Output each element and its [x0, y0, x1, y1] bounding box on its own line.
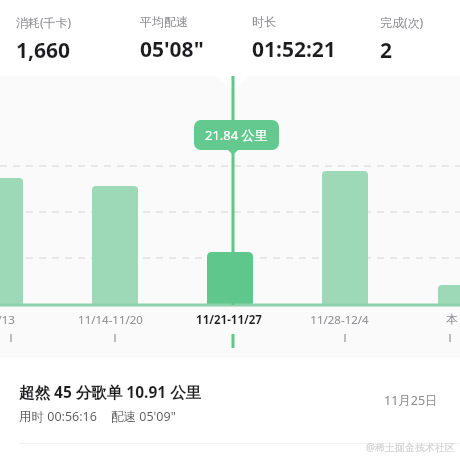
button[interactable]: 超然 45 分歌单 10.91 公里 — [0, 370, 460, 432]
button[interactable]: 时长 — [248, 10, 340, 68]
staticText: 平均配速 — [140, 14, 188, 29]
staticText: 11/21-11/27 — [196, 312, 262, 328]
staticText: 11/28-12/4 — [310, 312, 369, 328]
staticText: 05'08" — [140, 35, 204, 64]
button[interactable]: 21.84 公里 — [194, 120, 279, 150]
staticText: 超然 45 分歌单 10.91 公里 — [19, 381, 202, 402]
staticText: 时长 — [252, 14, 276, 29]
staticText: @稀土掘金技术社区 — [366, 440, 455, 454]
staticText: 本 — [446, 312, 458, 326]
staticText: 2 — [380, 36, 393, 65]
staticText: 11月25日 — [384, 392, 438, 409]
staticText: 完成(次) — [380, 14, 424, 30]
staticText: 01:52:21 — [252, 35, 336, 64]
staticText: 配速 05'09" — [111, 408, 176, 425]
button[interactable]: 完成(次) — [376, 10, 428, 69]
staticText: 用时 00:56:16 — [19, 408, 97, 425]
staticText: 21.84 公里 — [205, 126, 268, 144]
button[interactable]: 平均配速 — [136, 10, 208, 68]
staticText: 1,660 — [16, 36, 71, 65]
staticText: 11/14-11/20 — [78, 312, 143, 328]
button[interactable]: 消耗(千卡) — [12, 10, 76, 69]
staticText: 消耗(千卡) — [16, 14, 72, 30]
staticText: 11/13 — [0, 312, 15, 328]
